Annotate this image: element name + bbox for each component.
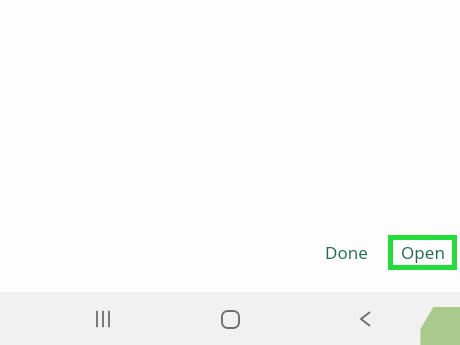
button[interactable]: Back (342, 296, 388, 342)
staticText: Open (401, 241, 445, 264)
staticText: Done (325, 241, 368, 264)
button[interactable]: Open (388, 235, 457, 270)
button[interactable]: Home (207, 296, 253, 342)
button[interactable]: Recent apps (80, 296, 126, 342)
button[interactable]: Done (315, 235, 378, 270)
